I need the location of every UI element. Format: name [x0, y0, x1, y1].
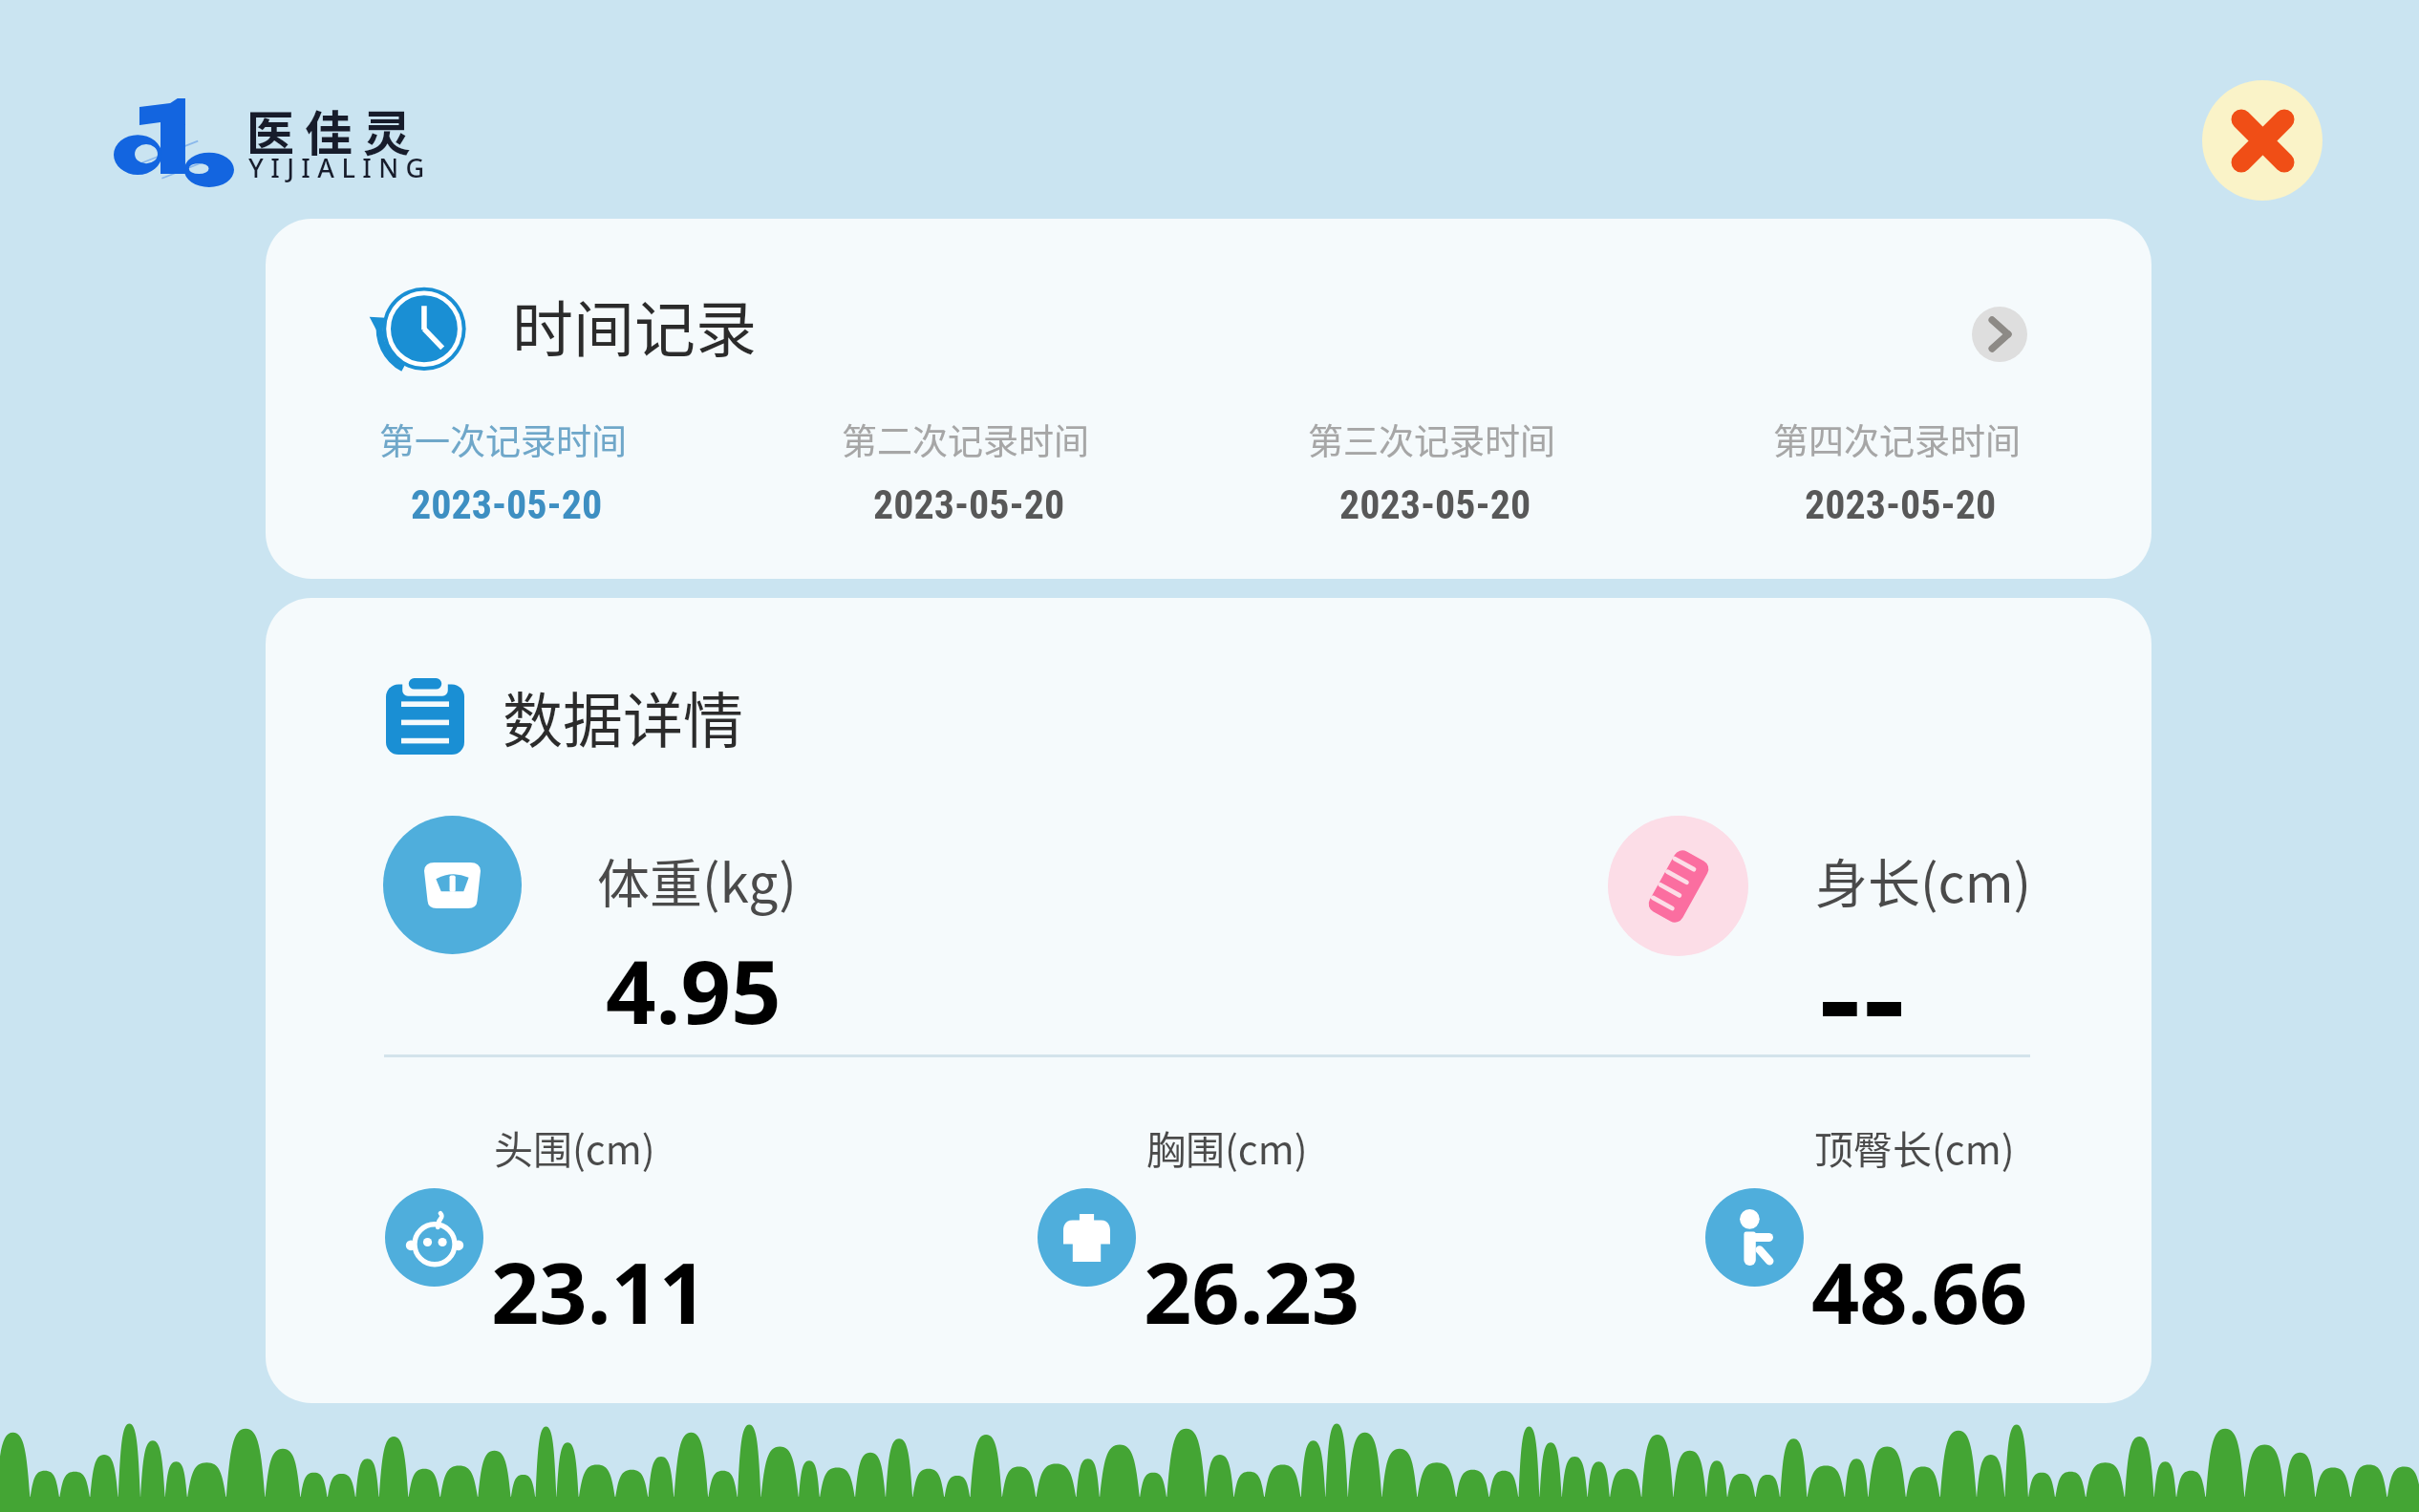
button[interactable]: Length	[1608, 816, 1748, 956]
staticText: 4.95	[606, 930, 781, 1050]
staticText: 头围(cm)	[494, 1118, 655, 1175]
button[interactable]: 第一次记录时间	[379, 414, 781, 465]
staticText: 26.23	[1144, 1234, 1360, 1349]
button[interactable]: 第四次记录时间	[1773, 414, 2151, 465]
staticText: YIJIALING	[248, 150, 432, 185]
staticText: 2023-05-20	[873, 481, 1065, 528]
staticText: 数据详情	[503, 672, 743, 759]
button[interactable]: View time records	[1972, 307, 2027, 362]
staticText: 身长(cm)	[1815, 841, 2032, 918]
staticText: 2023-05-20	[1339, 481, 1531, 528]
staticText: 顶臀长(cm)	[1814, 1118, 2015, 1175]
staticText: 第三次记录时间	[1308, 414, 1555, 465]
staticText: 23.11	[491, 1234, 708, 1349]
staticText: 第二次记录时间	[842, 414, 1089, 465]
staticText: 时间记录	[512, 281, 757, 370]
staticText: 2023-05-20	[411, 481, 603, 528]
staticText: 胸围(cm)	[1146, 1118, 1308, 1175]
staticText: 48.66	[1811, 1234, 2028, 1349]
button[interactable]: 胸围(cm)	[1038, 1110, 1254, 1225]
button[interactable]: 头围(cm)	[385, 1110, 602, 1225]
other: App logo	[114, 98, 234, 187]
button[interactable]: 时间记录	[366, 279, 757, 371]
staticText: 第四次记录时间	[1773, 414, 2021, 465]
staticText: 第一次记录时间	[379, 414, 627, 465]
staticText: 医佳灵	[246, 96, 421, 164]
button[interactable]: 第三次记录时间	[1308, 414, 1709, 465]
button[interactable]: Weight	[383, 816, 522, 954]
button[interactable]: 第二次记录时间	[842, 414, 1243, 465]
button[interactable]: Close	[2202, 80, 2323, 201]
button[interactable]: 顶臀长(cm)	[1705, 1110, 1922, 1225]
staticText: 体重(kg)	[597, 841, 797, 918]
button[interactable]: 数据详情	[386, 672, 743, 759]
staticText: 2023-05-20	[1805, 481, 1997, 528]
